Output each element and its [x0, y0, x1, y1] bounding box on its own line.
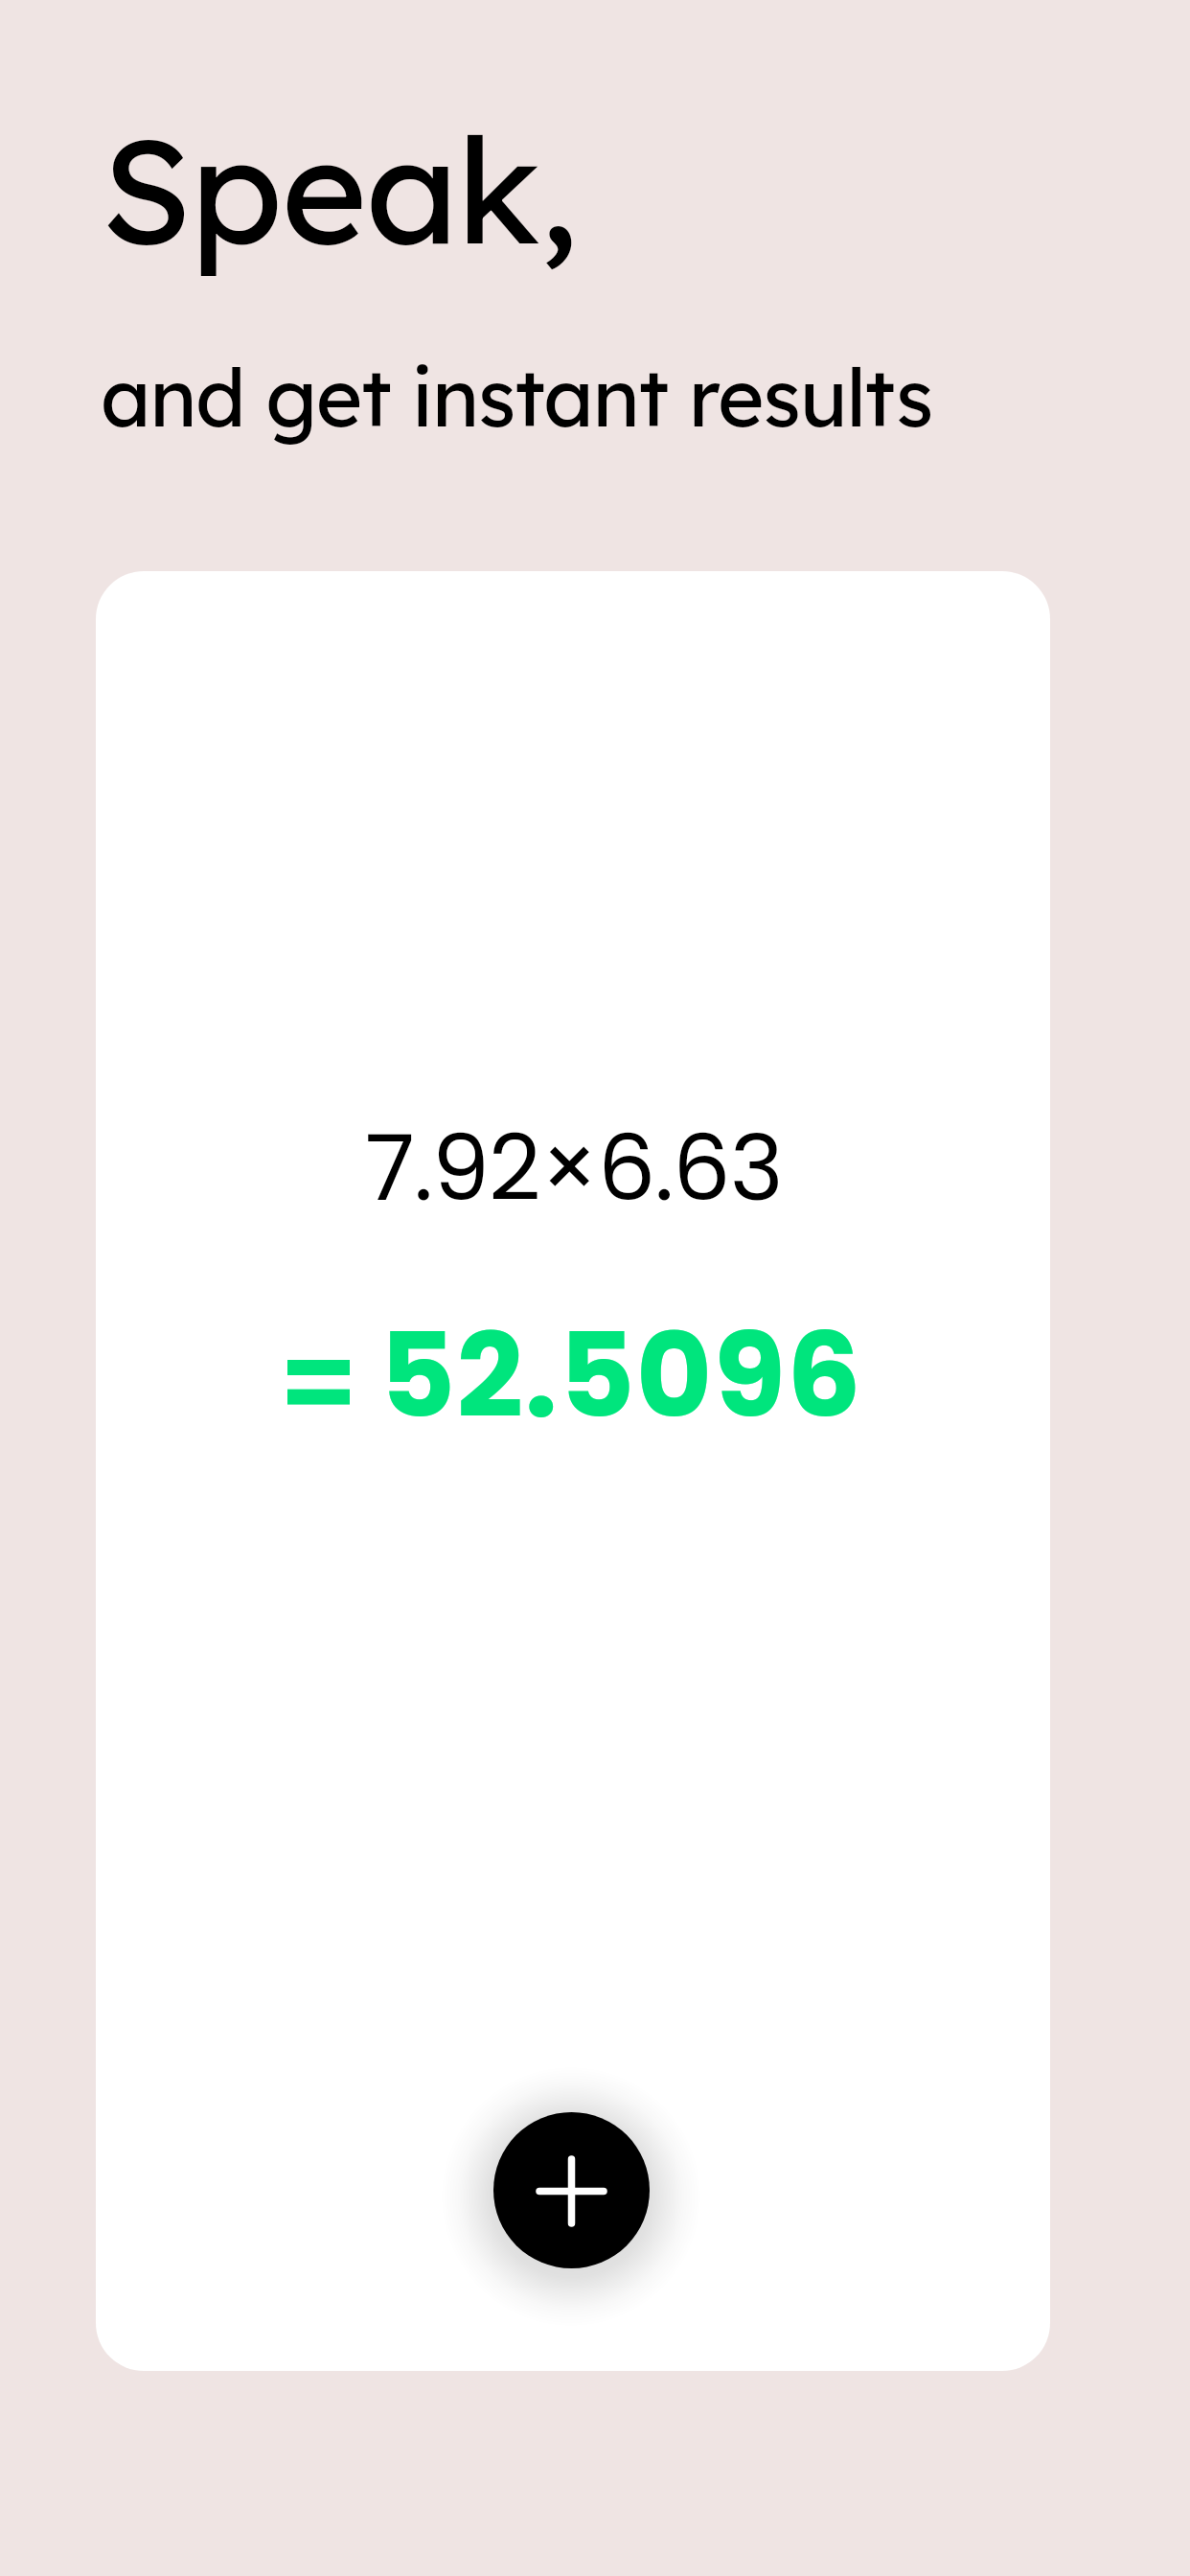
staticText: 7.92×6.63 — [365, 1104, 783, 1231]
staticText: and get instant results — [101, 347, 933, 447]
button[interactable]: Add calculation — [493, 2112, 650, 2268]
staticText: 52.5096 — [379, 1294, 863, 1458]
staticText: Speak, — [101, 97, 577, 280]
button[interactable]: 7.92×6.63 — [96, 571, 1050, 2371]
